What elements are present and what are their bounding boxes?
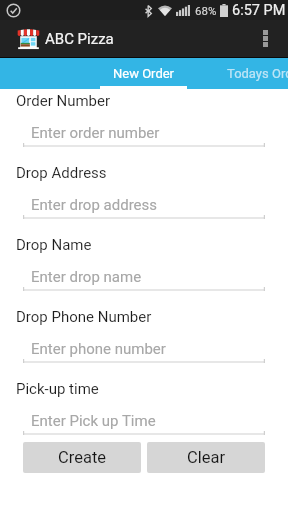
button[interactable]: More options [247,20,284,57]
staticText: Enter drop name [31,268,142,286]
staticText: Create [58,448,107,467]
staticText: Enter order number [31,124,160,142]
button[interactable]: New Order [100,58,187,89]
button[interactable]: Create [23,442,141,473]
staticText: New Order [113,66,175,81]
staticText: Enter drop address [31,196,158,214]
staticText: Todays Orders [227,66,288,81]
staticText: Pick-up time [16,380,99,398]
staticText: ABC Pizza [45,30,114,48]
staticText: Drop Address [16,164,107,182]
staticText: 6:57 PM [232,2,286,19]
staticText: Enter Pick up Time [31,412,156,430]
staticText: Order Number [16,92,111,110]
staticText: Drop Phone Number [16,308,152,326]
staticText: 68% [195,4,217,17]
staticText: Enter phone number [31,340,166,358]
staticText: Drop Name [16,236,92,254]
staticText: Clear [187,448,226,467]
button[interactable]: Clear [147,442,265,473]
button[interactable]: Todays Orders [187,58,288,89]
